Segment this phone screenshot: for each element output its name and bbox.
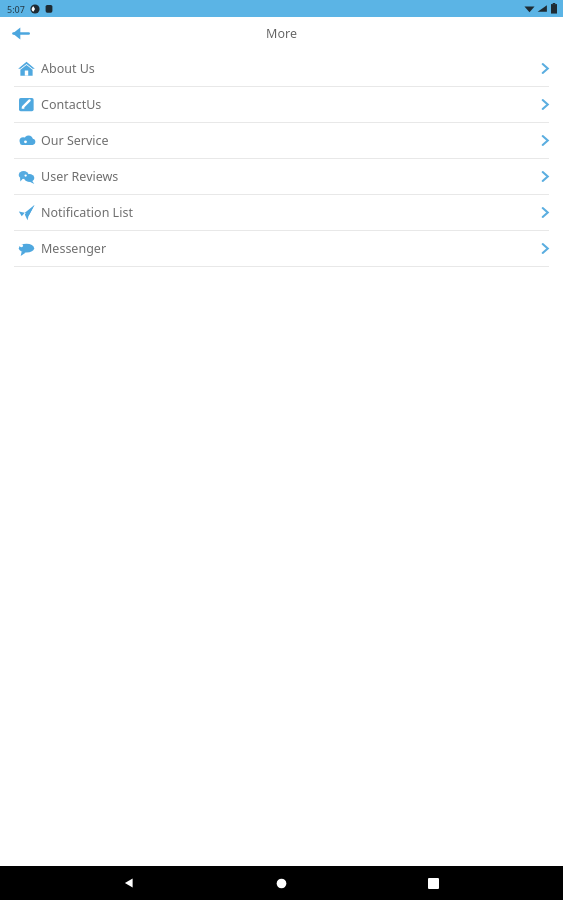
button[interactable]: User Reviews bbox=[0, 159, 563, 194]
button[interactable]: Home bbox=[259, 866, 303, 900]
staticText: User Reviews bbox=[41, 168, 119, 185]
button[interactable]: About Us bbox=[0, 51, 563, 86]
button[interactable]: Back bbox=[0, 17, 40, 50]
staticText: More bbox=[266, 25, 297, 42]
staticText: Messenger bbox=[41, 240, 107, 257]
staticText: About Us bbox=[41, 60, 95, 77]
staticText: Notification List bbox=[41, 204, 133, 221]
button[interactable]: Back bbox=[107, 866, 151, 900]
staticText: 5:07 bbox=[7, 3, 25, 15]
staticText: ContactUs bbox=[41, 96, 102, 113]
button[interactable]: Notification List bbox=[0, 195, 563, 230]
staticText: Our Service bbox=[41, 132, 109, 149]
button[interactable]: ContactUs bbox=[0, 87, 563, 122]
button[interactable]: Our Service bbox=[0, 123, 563, 158]
button[interactable]: Messenger bbox=[0, 231, 563, 266]
button[interactable]: Recent apps bbox=[411, 866, 455, 900]
